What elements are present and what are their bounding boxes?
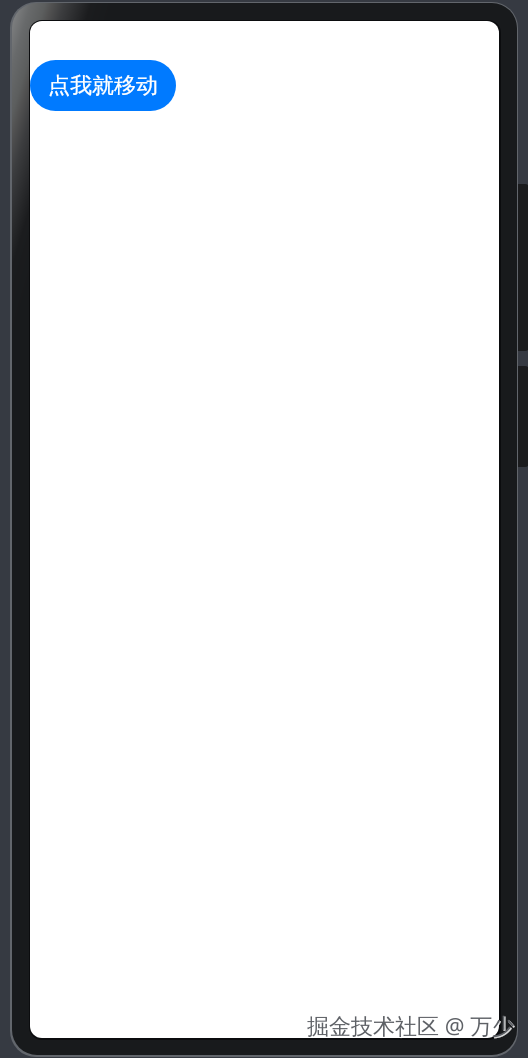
staticText: 掘金技术社区 @ 万少 bbox=[308, 1011, 516, 1041]
staticText: 点我就移动 bbox=[48, 72, 158, 100]
staticText: 掘金技术社区 @ 万少 bbox=[307, 1010, 515, 1040]
button[interactable]: 点我就移动 bbox=[30, 60, 176, 111]
